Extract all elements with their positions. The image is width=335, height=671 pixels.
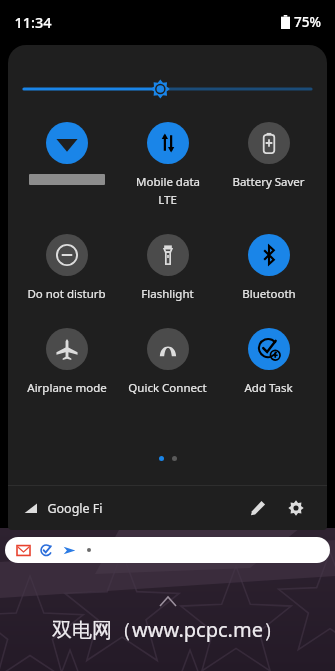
- staticText: Bluetooth: [242, 286, 296, 302]
- staticText: Mobile data: [136, 174, 200, 190]
- staticText: LTE: [158, 192, 177, 208]
- staticText: Do not disturb: [27, 286, 106, 302]
- button[interactable]: Bluetooth: [218, 232, 319, 304]
- staticText: 75%: [294, 13, 321, 31]
- staticText: Add Task: [244, 380, 293, 396]
- staticText: Quick Connect: [128, 380, 207, 396]
- staticText: Battery Saver: [232, 174, 305, 190]
- staticText: Flashlight: [141, 286, 194, 302]
- staticText: 11:34: [14, 12, 52, 32]
- button[interactable]: Airplane mode: [16, 326, 117, 398]
- button[interactable]: Edit: [241, 491, 275, 525]
- button[interactable]: Battery Saver: [218, 120, 319, 192]
- button[interactable]: Settings: [279, 491, 313, 525]
- staticText: Airplane mode: [27, 380, 107, 396]
- button[interactable]: Quick Connect: [117, 326, 218, 398]
- button[interactable]: Mobile data: [117, 120, 218, 210]
- button[interactable]: Add Task: [218, 326, 319, 398]
- button[interactable]: Brightness: [24, 76, 311, 102]
- button[interactable]: Do not disturb: [16, 232, 117, 304]
- staticText: 双电网（www.pcpc.me）: [52, 616, 283, 643]
- button[interactable]: [16, 120, 117, 187]
- staticText: Google Fi: [47, 500, 103, 517]
- button[interactable]: Google Fi: [22, 494, 105, 523]
- button[interactable]: Flashlight: [117, 232, 218, 304]
- button[interactable]: [5, 537, 330, 563]
